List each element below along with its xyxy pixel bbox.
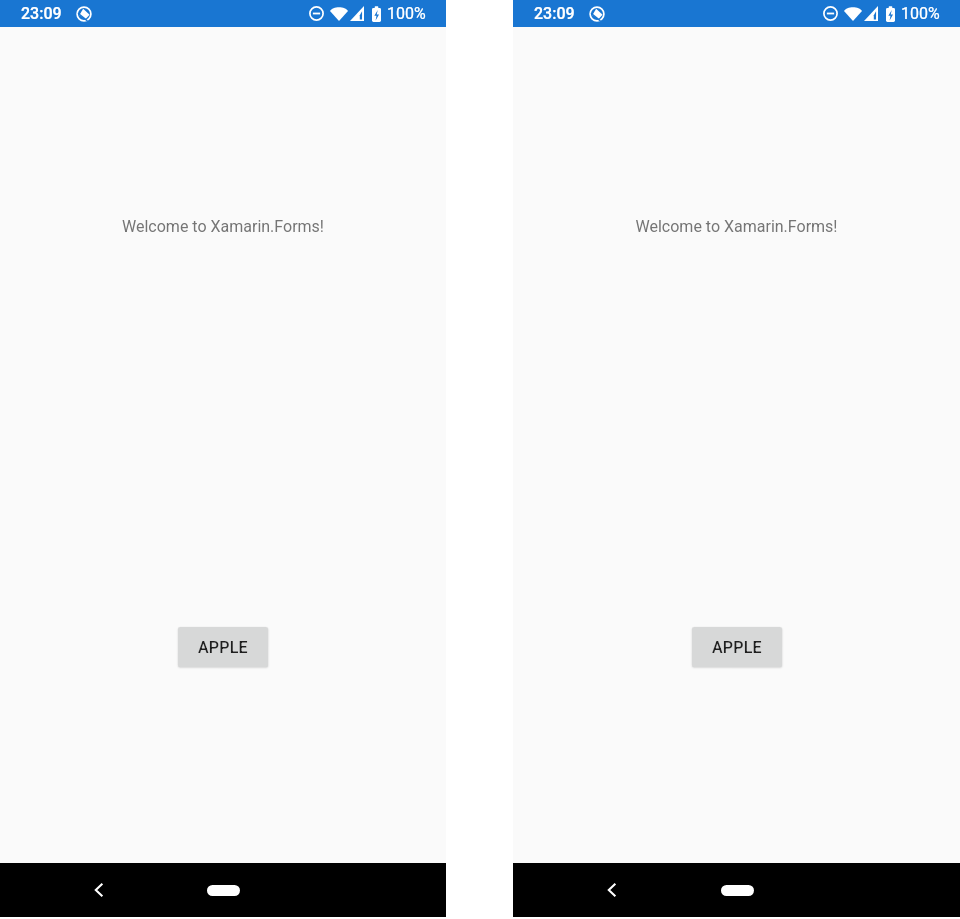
- button[interactable]: Back: [75, 866, 123, 914]
- button[interactable]: Home: [195, 875, 251, 905]
- staticText: 23:09: [21, 4, 62, 23]
- button[interactable]: Home: [709, 875, 765, 905]
- staticText: 100%: [901, 4, 940, 23]
- staticText: APPLE: [198, 638, 248, 657]
- staticText: 23:09: [534, 4, 575, 23]
- staticText: APPLE: [712, 638, 762, 657]
- button[interactable]: APPLE: [692, 627, 782, 667]
- staticText: Welcome to Xamarin.Forms!: [513, 217, 960, 236]
- button[interactable]: Back: [588, 866, 636, 914]
- staticText: 100%: [387, 4, 426, 23]
- button[interactable]: APPLE: [178, 627, 268, 667]
- staticText: Welcome to Xamarin.Forms!: [0, 217, 446, 236]
